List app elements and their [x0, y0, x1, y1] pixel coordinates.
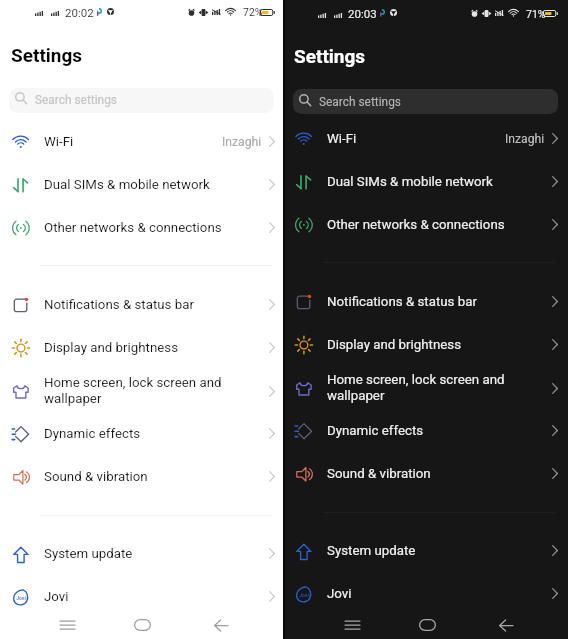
staticText: Inzaghi: [222, 135, 262, 149]
staticText: Notifications & status bar: [327, 294, 477, 310]
staticText: System update: [44, 546, 133, 562]
staticText: Notifications & status bar: [44, 297, 194, 313]
button[interactable]: System update: [0, 532, 283, 575]
staticText: Display and brightness: [44, 340, 179, 356]
staticText: Dual SIMs & mobile network: [44, 177, 210, 193]
button[interactable]: Sound & vibration: [285, 452, 568, 495]
button[interactable]: Recents: [50, 610, 85, 639]
staticText: Wi-Fi: [327, 131, 357, 147]
staticText: Jovi: [16, 595, 26, 601]
staticText: Home screen, lock screen and wallpaper: [327, 372, 505, 404]
staticText: Dynamic effects: [327, 423, 424, 439]
button[interactable]: Home: [125, 610, 160, 639]
staticText: Inzaghi: [505, 132, 545, 146]
staticText: Home screen, lock screen and wallpaper: [44, 375, 222, 407]
staticText: Dual SIMs & mobile network: [327, 174, 493, 190]
staticText: Sound & vibration: [327, 466, 431, 482]
staticText: 72%: [243, 6, 263, 18]
button[interactable]: Dynamic effects: [285, 409, 568, 452]
staticText: Wi-Fi: [44, 134, 74, 150]
staticText: Settings: [294, 45, 366, 67]
staticText: Jovi: [299, 592, 309, 598]
button[interactable]: Back: [486, 610, 521, 639]
staticText: Jovi: [44, 589, 69, 605]
staticText: System update: [327, 543, 416, 559]
button[interactable]: Dual SIMs & mobile network: [285, 160, 568, 203]
button[interactable]: [293, 89, 558, 114]
staticText: Dynamic effects: [44, 426, 141, 442]
staticText: Search settings: [35, 93, 117, 107]
button[interactable]: Notifications & status bar: [285, 280, 568, 323]
button[interactable]: Home screen, lock screen and wallpaper: [0, 362, 283, 420]
staticText: Search settings: [319, 95, 401, 109]
button[interactable]: Home screen, lock screen and wallpaper: [285, 359, 568, 417]
button[interactable]: Jovi: [285, 572, 568, 615]
staticText: Sound & vibration: [44, 469, 148, 485]
button[interactable]: System update: [285, 529, 568, 572]
button[interactable]: Back: [201, 610, 236, 639]
staticText: 20:02: [65, 6, 94, 19]
button[interactable]: Wi-Fi: [0, 120, 283, 163]
button[interactable]: Other networks & connections: [285, 203, 568, 246]
button[interactable]: Home: [410, 610, 445, 639]
staticText: Settings: [11, 44, 83, 66]
button[interactable]: [9, 88, 274, 113]
button[interactable]: Display and brightness: [0, 326, 283, 369]
button[interactable]: Other networks & connections: [0, 206, 283, 249]
button[interactable]: Dynamic effects: [0, 412, 283, 455]
button[interactable]: Recents: [335, 610, 370, 639]
staticText: 71%: [526, 8, 546, 20]
staticText: Other networks & connections: [327, 217, 505, 233]
staticText: 20:03: [348, 7, 377, 20]
staticText: Display and brightness: [327, 337, 462, 353]
button[interactable]: Sound & vibration: [0, 455, 283, 498]
button[interactable]: Dual SIMs & mobile network: [0, 163, 283, 206]
button[interactable]: Wi-Fi: [285, 117, 568, 160]
staticText: Other networks & connections: [44, 220, 222, 236]
staticText: Jovi: [327, 586, 352, 602]
button[interactable]: Notifications & status bar: [0, 283, 283, 326]
button[interactable]: Display and brightness: [285, 323, 568, 366]
button[interactable]: Jovi: [0, 575, 283, 618]
